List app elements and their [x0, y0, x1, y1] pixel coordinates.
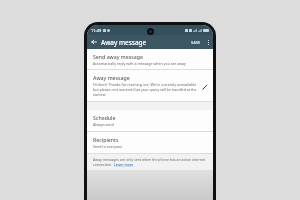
button[interactable]: Back [87, 35, 101, 49]
staticText: Automatically reply with a message when … [93, 61, 186, 66]
staticText: Recipients [93, 136, 119, 143]
staticText: 11:49 [91, 28, 102, 33]
staticText: Schedule [93, 114, 116, 121]
button[interactable]: Edit away message [200, 82, 209, 91]
button[interactable]: Learn more [114, 162, 134, 167]
staticText: Always send [93, 122, 114, 127]
button[interactable]: More options [204, 35, 213, 49]
staticText: Hi there! Thanks for reaching out. We're… [93, 82, 197, 97]
staticText: Away message [101, 38, 147, 47]
button[interactable]: Away message [87, 70, 213, 101]
button[interactable]: SAVE [188, 35, 204, 49]
button[interactable]: Send away message [87, 49, 213, 69]
staticText: Away message [93, 74, 130, 81]
staticText: SAVE [191, 40, 201, 45]
staticText: Send away message [93, 53, 143, 60]
staticText: connection. [93, 162, 114, 167]
button[interactable]: Schedule [87, 110, 213, 131]
staticText: Away messages are only sent when the pho… [93, 157, 206, 162]
button[interactable]: Recipients [87, 132, 213, 153]
staticText: Learn more [114, 162, 134, 167]
staticText: Send to everyone [93, 144, 123, 149]
